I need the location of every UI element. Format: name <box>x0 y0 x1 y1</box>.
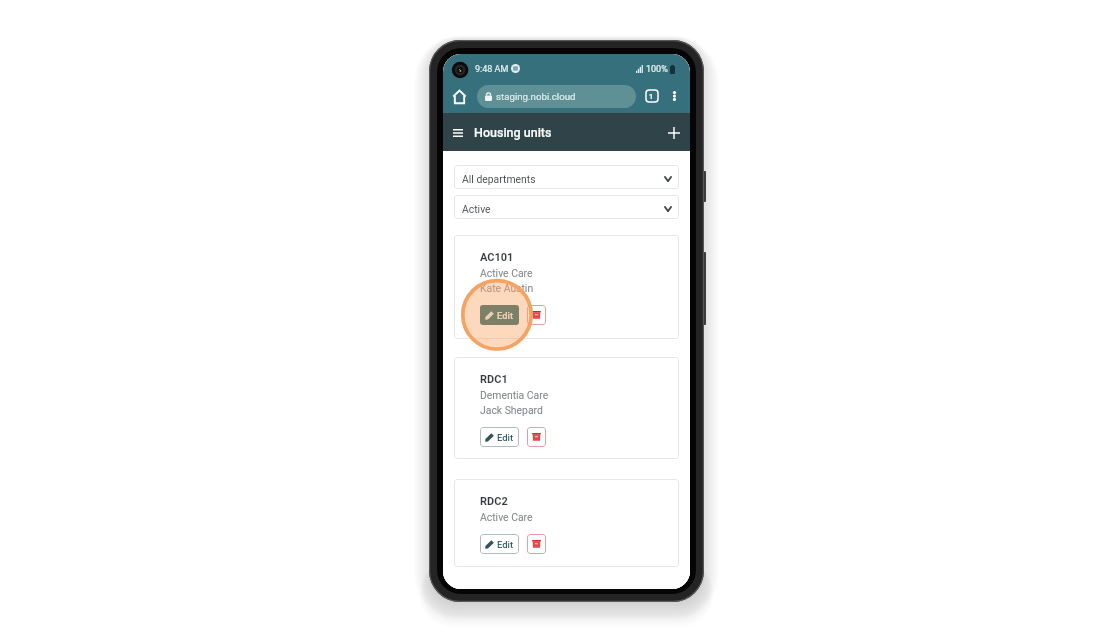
staticText: 100% <box>646 64 668 75</box>
button[interactable]: AC101 <box>454 235 679 339</box>
button[interactable]: RDC2 <box>454 479 679 567</box>
button[interactable]: More options <box>664 83 685 108</box>
button[interactable]: Open navigation menu <box>445 119 471 147</box>
staticText: Edit <box>497 310 514 321</box>
staticText: Active Care <box>480 511 533 523</box>
button[interactable]: All departments <box>454 165 679 189</box>
staticText: AC101 <box>480 251 514 264</box>
staticText: Edit <box>497 432 514 443</box>
staticText: Housing units <box>474 125 552 140</box>
staticText: Dementia Care <box>480 389 549 401</box>
staticText: All departments <box>462 173 536 185</box>
button[interactable]: Edit <box>480 534 519 554</box>
button[interactable]: Edit <box>480 305 519 325</box>
staticText: staging.nobi.cloud <box>496 91 576 102</box>
button[interactable]: staging.nobi.cloud <box>477 85 636 108</box>
button[interactable]: Add housing unit <box>660 119 687 147</box>
button[interactable]: Home <box>445 83 473 111</box>
staticText: Active Care <box>480 267 533 279</box>
button[interactable]: RDC1 <box>454 357 679 459</box>
staticText: RDC1 <box>480 373 508 386</box>
staticText: Kate Austin <box>480 282 534 294</box>
staticText: 1 <box>649 92 654 100</box>
button[interactable]: Delete <box>527 534 546 554</box>
staticText: 9:48 AM <box>475 64 509 75</box>
button[interactable]: Tabs <box>641 85 662 106</box>
button[interactable]: Delete <box>527 427 546 447</box>
staticText: Jack Shepard <box>480 404 543 416</box>
staticText: Edit <box>497 539 514 550</box>
staticText: Active <box>462 203 491 215</box>
staticText: RDC2 <box>480 495 508 508</box>
button[interactable]: Active <box>454 195 679 219</box>
button[interactable]: Delete <box>527 305 546 325</box>
button[interactable]: Edit <box>480 427 519 447</box>
